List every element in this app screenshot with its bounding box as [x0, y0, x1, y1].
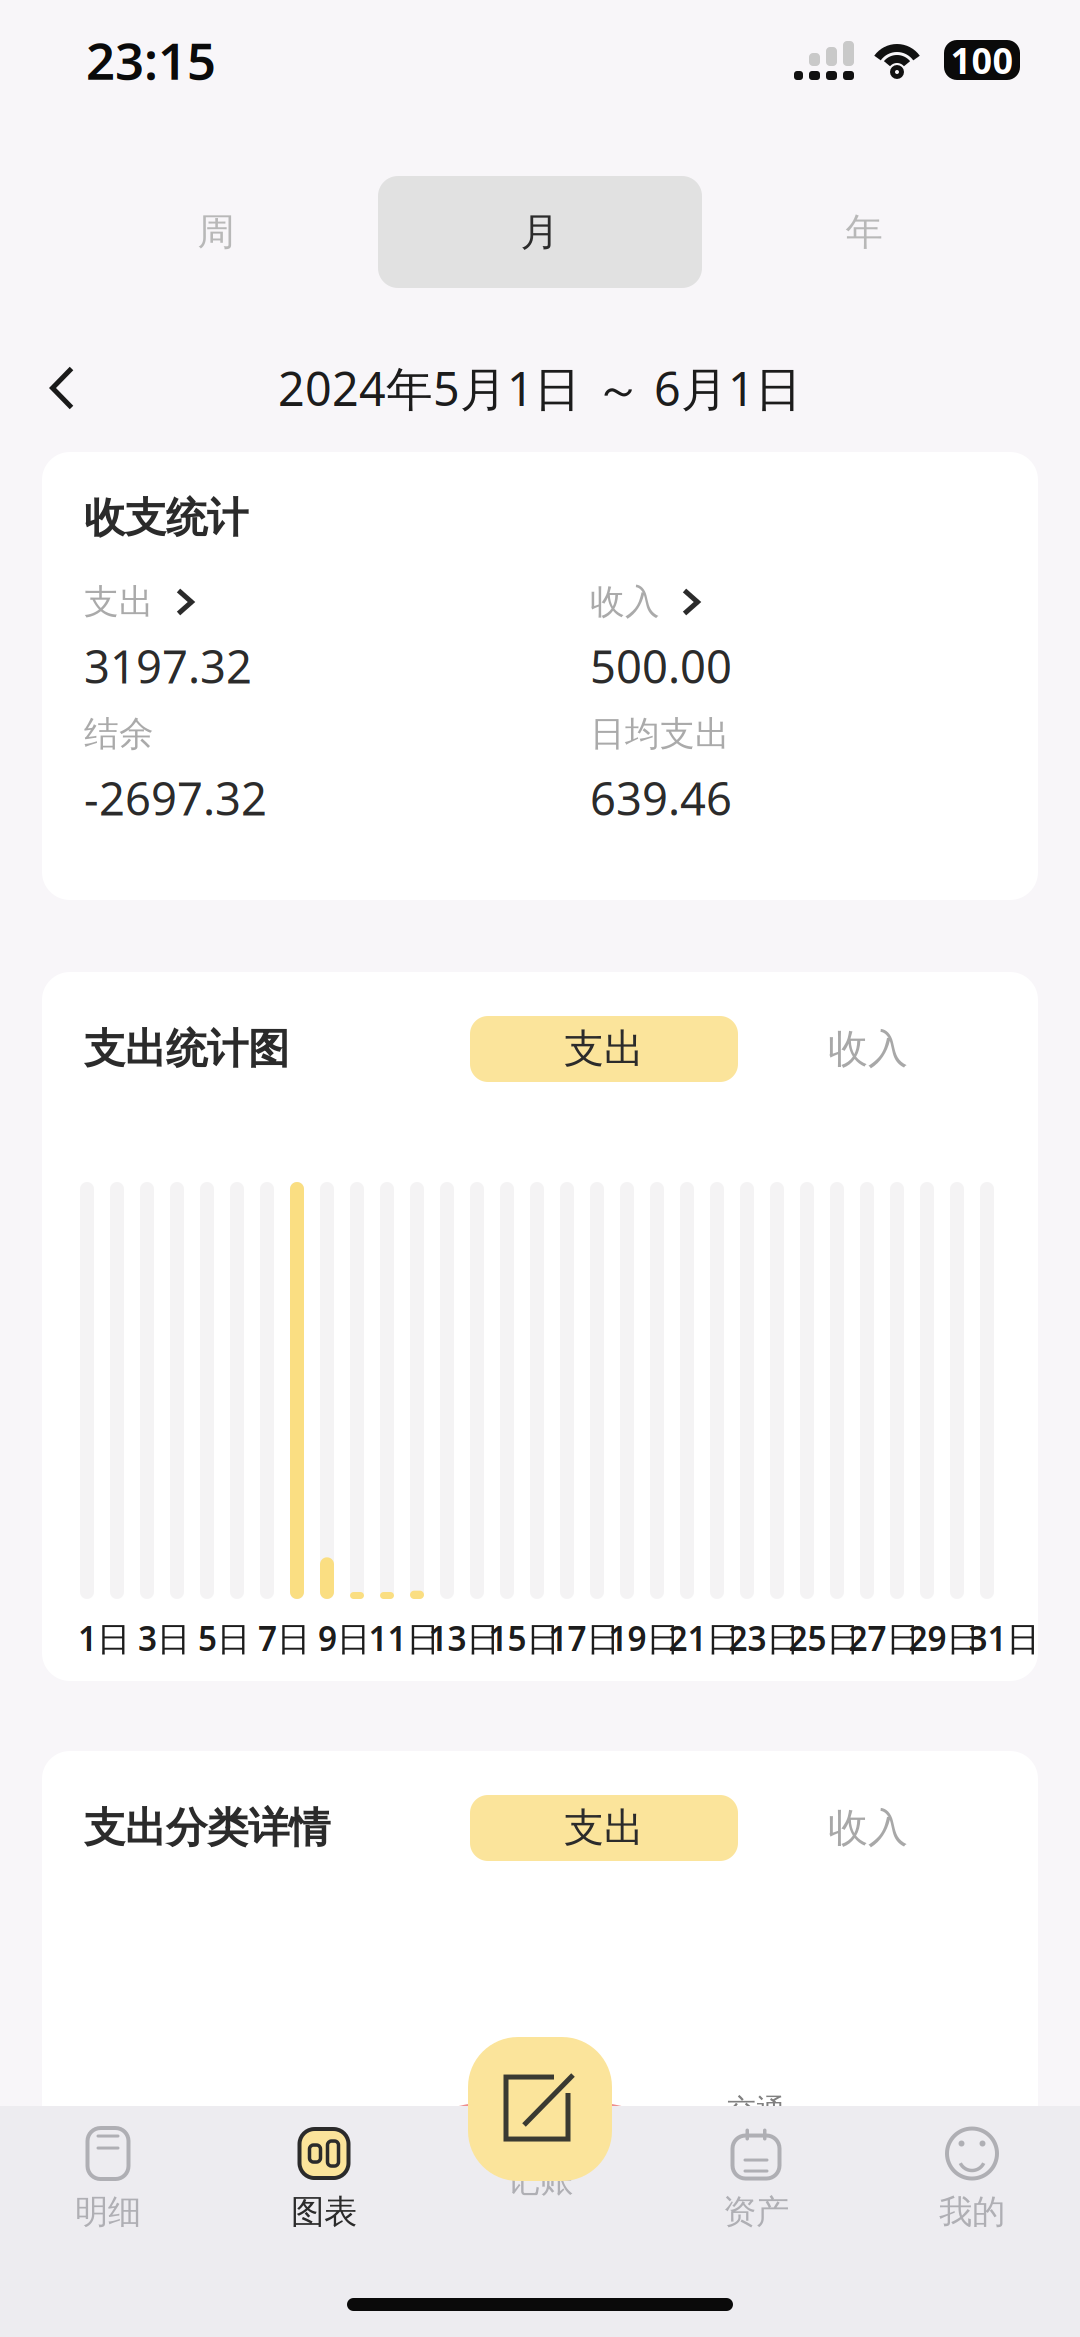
staticText: 23:15	[86, 26, 216, 94]
button[interactable]: 收入	[738, 1795, 998, 1861]
staticText: 11日	[368, 1616, 439, 1660]
staticText: 27日	[848, 1616, 919, 1660]
staticText: 结余	[84, 713, 154, 755]
button[interactable]: 支出	[470, 1016, 738, 1082]
button[interactable]: 年	[702, 176, 1026, 288]
staticText: 支出	[564, 1803, 644, 1852]
staticText: 收入	[590, 581, 660, 623]
staticText: 639.46	[590, 768, 732, 828]
staticText: 19日	[608, 1616, 679, 1660]
button[interactable]: 月	[378, 176, 702, 288]
staticText: 图表	[291, 2191, 357, 2232]
button[interactable]: 资产	[648, 2106, 864, 2238]
staticText: 交通	[727, 2092, 785, 2128]
button[interactable]: 记账	[468, 2037, 612, 2181]
button[interactable]: 收入	[738, 1016, 998, 1082]
staticText: 13日	[428, 1616, 499, 1660]
staticText: 日均支出	[590, 713, 730, 755]
staticText: 支出	[84, 581, 154, 623]
staticText: 9日	[318, 1616, 370, 1660]
button[interactable]: 记账	[432, 2106, 648, 2238]
staticText: 年	[845, 209, 882, 255]
button[interactable]: 明细	[0, 2106, 216, 2238]
staticText: 收支统计	[84, 493, 248, 543]
button[interactable]: 图表	[216, 2106, 432, 2238]
staticText: 明细	[75, 2191, 141, 2232]
staticText: 周	[197, 209, 234, 255]
button[interactable]: 周	[54, 176, 378, 288]
staticText: 支出统计图	[84, 1024, 289, 1074]
button[interactable]: Back	[0, 342, 124, 434]
staticText: 5日	[198, 1616, 250, 1660]
staticText: 1日	[78, 1616, 130, 1660]
staticText: 29日	[908, 1616, 979, 1660]
staticText: 2024年5月1日 ～ 6月1日	[278, 357, 802, 419]
staticText: 我的	[939, 2191, 1005, 2232]
staticText: 17日	[548, 1616, 619, 1660]
staticText: 25日	[788, 1616, 859, 1660]
staticText: 月	[520, 208, 559, 256]
staticText: 资产	[723, 2191, 789, 2232]
staticText: 3日	[138, 1616, 190, 1660]
staticText: 3197.32	[84, 636, 252, 696]
staticText: 记账	[507, 2160, 573, 2201]
staticText: 支出	[564, 1024, 644, 1073]
button[interactable]: 我的	[864, 2106, 1080, 2238]
staticText: 31日	[968, 1616, 1039, 1660]
staticText: 15日	[488, 1616, 559, 1660]
staticText: -2697.32	[84, 768, 267, 828]
staticText: 23日	[728, 1616, 799, 1660]
staticText: 100	[950, 36, 1013, 84]
staticText: 500.00	[590, 636, 732, 696]
button[interactable]: 支出	[470, 1795, 738, 1861]
staticText: 收入	[828, 1803, 908, 1852]
staticText: 21日	[668, 1616, 739, 1660]
staticText: 7日	[258, 1616, 310, 1660]
staticText: 收入	[828, 1024, 908, 1073]
staticText: 支出分类详情	[84, 1803, 330, 1853]
